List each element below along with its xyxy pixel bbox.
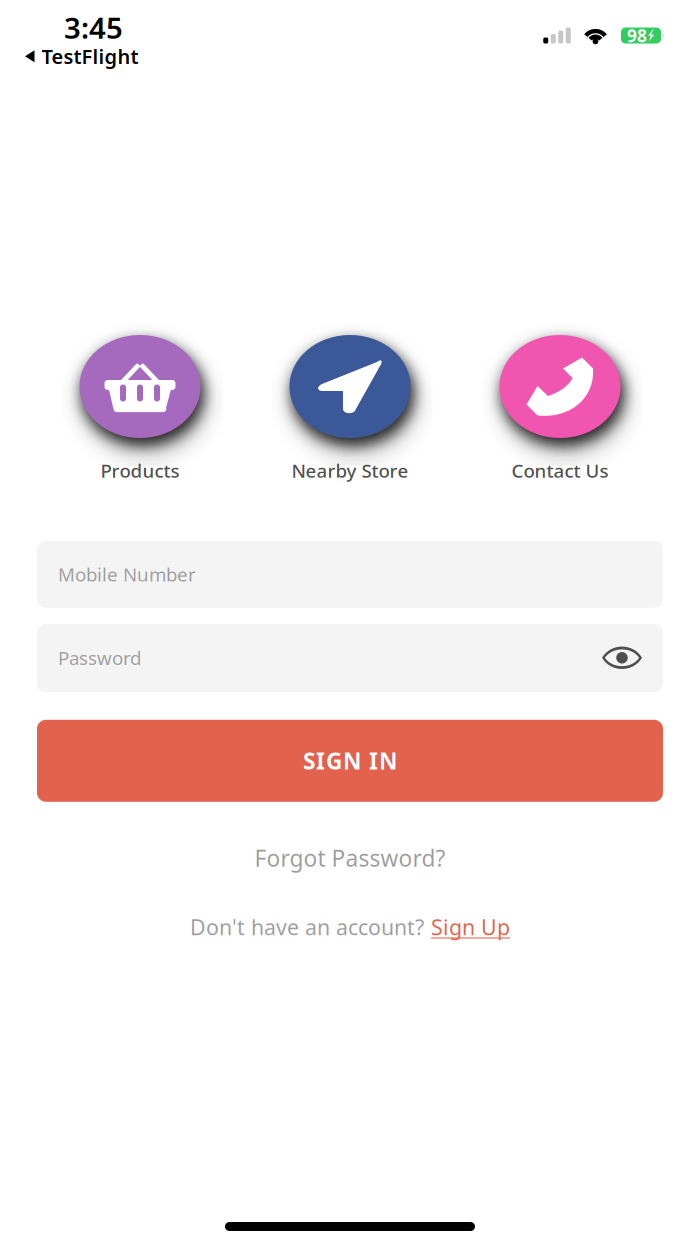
button[interactable]: Show password [602, 646, 642, 669]
staticText: Forgot Password? [254, 843, 445, 873]
button[interactable]: Contact Us [465, 335, 655, 483]
button[interactable]: Products [45, 335, 235, 483]
staticText: Password [58, 645, 141, 670]
staticText: Products [100, 458, 179, 483]
staticText: 3:45 [64, 8, 123, 47]
button[interactable]: Forgot Password? [254, 843, 445, 873]
staticText: TestFlight [41, 43, 138, 70]
staticText: Sign Up [431, 913, 510, 941]
staticText: Mobile Number [58, 562, 196, 587]
button[interactable]: Sign Up [431, 913, 510, 941]
staticText: SIGN IN [303, 746, 397, 776]
staticText: 98 [627, 24, 647, 47]
staticText: Nearby Store [291, 458, 408, 483]
staticText: Contact Us [511, 458, 608, 483]
staticText: Don't have an account? [190, 913, 424, 941]
button[interactable]: Nearby Store [255, 335, 445, 483]
button[interactable]: SIGN IN [37, 720, 663, 802]
